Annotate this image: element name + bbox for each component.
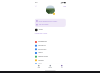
button[interactable]: Google: [33, 28, 68, 32]
button[interactable]: Change profile photo: [53, 13, 55, 15]
staticText: Recommended: [38, 41, 47, 43]
button[interactable]: Explore: [44, 64, 56, 69]
button[interactable]: Personal info: [33, 44, 68, 47]
staticText: Payments: [38, 59, 44, 61]
button[interactable]: Home: [33, 64, 44, 69]
button[interactable]: You: [56, 64, 68, 69]
button[interactable]: People & sharing: [33, 55, 68, 58]
staticText: Home: [37, 67, 40, 68]
button[interactable]: About: [33, 62, 68, 66]
staticText: Security: [38, 52, 43, 54]
staticText: Personal info: [38, 45, 46, 46]
staticText: Explore: [49, 67, 52, 68]
staticText: Google: [39, 29, 43, 31]
button[interactable]: Recommended: [33, 40, 68, 44]
staticText: Data & privacy: [38, 48, 46, 50]
button[interactable]: Payments: [33, 58, 68, 62]
button[interactable]: Profile photo: [46, 5, 55, 14]
staticText: Finish setting up your Account: [39, 20, 57, 22]
staticText: 9:41: [35, 2, 38, 3]
staticText: You: [61, 67, 63, 68]
staticText: About: [38, 63, 42, 65]
staticText: Manage your Account: [35, 33, 47, 35]
button[interactable]: Manage your Account: [33, 33, 68, 35]
button[interactable]: Finish setting up your Account: [35, 19, 66, 23]
button[interactable]: Help: [63, 5, 66, 8]
button[interactable]: Turn on backup: [35, 23, 66, 26]
button[interactable]: Close: [34, 4, 38, 8]
staticText: Turn on backup: [39, 24, 48, 25]
button[interactable]: Security: [33, 51, 68, 55]
button[interactable]: Data & privacy: [33, 47, 68, 51]
staticText: People & sharing: [38, 56, 48, 57]
staticText: Help: [63, 5, 66, 7]
